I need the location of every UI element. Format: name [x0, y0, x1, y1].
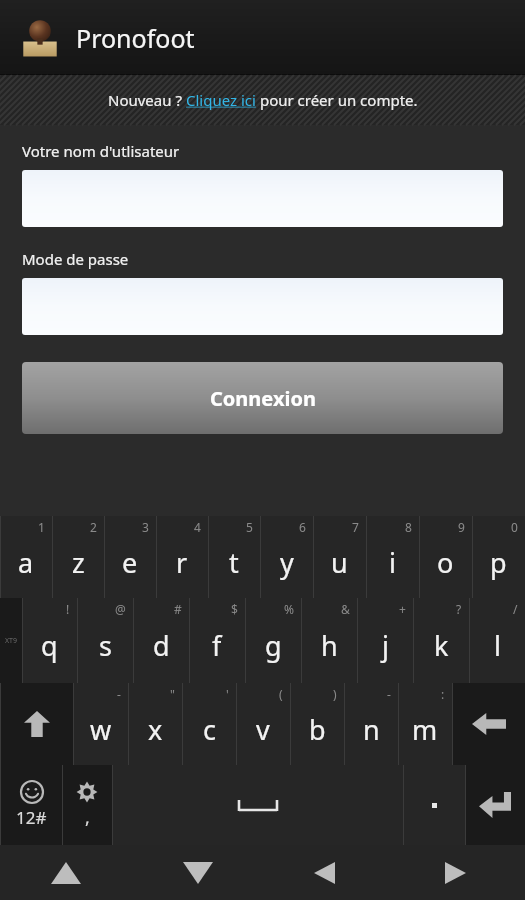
- staticText: ?: [456, 601, 462, 617]
- button[interactable]: &: [301, 598, 357, 683]
- staticText: a: [18, 544, 34, 581]
- staticText: @: [115, 601, 126, 617]
- staticText: r: [176, 544, 188, 581]
- staticText: 12#: [16, 806, 47, 829]
- button[interactable]: Symbols: [0, 765, 62, 845]
- staticText: 3: [142, 519, 149, 535]
- button[interactable]: 0: [472, 516, 525, 598]
- button[interactable]: Backspace: [452, 683, 525, 765]
- button[interactable]: Settings: [62, 765, 112, 845]
- button[interactable]: 3: [104, 516, 156, 598]
- staticText: $: [231, 601, 238, 617]
- staticText: (: [279, 686, 283, 702]
- button[interactable]: Down: [132, 845, 263, 900]
- staticText: -: [387, 686, 391, 702]
- button[interactable]: (: [236, 683, 290, 765]
- staticText: z: [72, 544, 85, 581]
- button[interactable]: !: [22, 598, 77, 683]
- staticText: ,: [85, 805, 90, 830]
- button[interactable]: Left: [263, 845, 394, 900]
- staticText: g: [265, 627, 282, 664]
- staticText: 7: [352, 519, 359, 535]
- button[interactable]: Period: [403, 765, 465, 845]
- staticText: 9: [458, 519, 465, 535]
- button[interactable]: 7: [313, 516, 366, 598]
- staticText: 5: [246, 519, 253, 535]
- staticText: /: [513, 601, 518, 617]
- button[interactable]: Right: [394, 845, 525, 900]
- staticText: l: [494, 627, 501, 664]
- staticText: :: [441, 686, 445, 702]
- staticText: j: [382, 627, 389, 664]
- staticText: q: [41, 627, 58, 664]
- button[interactable]: 1: [0, 516, 52, 598]
- staticText: #: [174, 601, 182, 617]
- staticText: w: [90, 711, 112, 748]
- button[interactable]: %: [245, 598, 301, 683]
- staticText: Pronofoot: [76, 21, 195, 55]
- staticText: t: [229, 544, 239, 581]
- button[interactable]: 8: [366, 516, 419, 598]
- staticText: 2: [90, 519, 97, 535]
- button[interactable]: 4: [156, 516, 208, 598]
- staticText: Mode de passe: [22, 249, 129, 269]
- button[interactable]: Cliquez ici: [186, 90, 256, 110]
- button[interactable]: Connexion: [22, 362, 503, 434]
- staticText: u: [331, 544, 348, 581]
- staticText: %: [284, 601, 294, 617]
- button[interactable]: @: [77, 598, 133, 683]
- staticText: x: [148, 711, 163, 748]
- staticText: e: [122, 544, 138, 581]
- button[interactable]: ): [290, 683, 344, 765]
- staticText: !: [66, 601, 70, 617]
- staticText: pour créer un compte.: [256, 90, 418, 110]
- staticText: 6: [299, 519, 306, 535]
- staticText: d: [153, 627, 170, 664]
- staticText: +: [399, 601, 406, 617]
- button[interactable]: ': [182, 683, 236, 765]
- staticText: m: [412, 711, 438, 748]
- staticText: k: [434, 627, 449, 664]
- button[interactable]: -: [344, 683, 398, 765]
- staticText: XT9: [5, 636, 17, 646]
- staticText: ': [226, 686, 229, 702]
- staticText: h: [321, 627, 338, 664]
- button[interactable]: 2: [52, 516, 104, 598]
- staticText: 1: [38, 519, 45, 535]
- staticText: ): [333, 686, 337, 702]
- button[interactable]: 6: [260, 516, 313, 598]
- button[interactable]: Enter: [465, 765, 525, 845]
- button[interactable]: /: [469, 598, 525, 683]
- button[interactable]: 5: [208, 516, 260, 598]
- staticText: i: [389, 544, 396, 581]
- staticText: p: [490, 544, 507, 581]
- staticText: Votre nom d'utlisateur: [22, 141, 180, 161]
- staticText: o: [437, 544, 454, 581]
- button[interactable]: Space: [112, 765, 403, 845]
- button[interactable]: #: [133, 598, 189, 683]
- button[interactable]: :: [398, 683, 452, 765]
- staticText: Nouveau ?: [108, 90, 186, 110]
- button[interactable]: +: [357, 598, 413, 683]
- staticText: 8: [405, 519, 412, 535]
- staticText: b: [309, 711, 326, 748]
- button[interactable]: -: [73, 683, 128, 765]
- staticText: &: [341, 601, 350, 617]
- staticText: y: [280, 544, 294, 581]
- staticText: n: [363, 711, 380, 748]
- button[interactable]: ": [128, 683, 182, 765]
- staticText: 4: [194, 519, 201, 535]
- staticText: Connexion: [210, 385, 316, 412]
- button[interactable]: Shift: [0, 683, 73, 765]
- button[interactable]: [22, 170, 503, 227]
- staticText: ": [170, 686, 175, 702]
- button[interactable]: $: [189, 598, 245, 683]
- staticText: f: [212, 627, 222, 664]
- button[interactable]: ?: [413, 598, 469, 683]
- staticText: v: [256, 711, 270, 748]
- button[interactable]: 9: [419, 516, 472, 598]
- button[interactable]: Up: [0, 845, 132, 900]
- staticText: c: [203, 711, 216, 748]
- staticText: -: [117, 686, 121, 702]
- button[interactable]: [22, 278, 503, 335]
